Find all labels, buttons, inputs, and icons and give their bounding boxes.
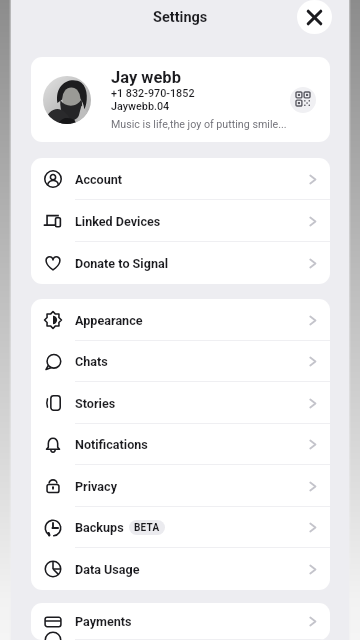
staticText: Payments [75,614,132,629]
button[interactable]: Notifications [31,424,330,465]
staticText: Chats [75,354,108,369]
button[interactable]: Stories [31,382,330,424]
staticText: Settings [153,9,208,26]
staticText: Music is life,the joy of putting smile..… [111,118,287,131]
staticText: Jaywebb.04 [111,100,170,113]
button[interactable]: Chats [31,341,330,382]
staticText: Donate to Signal [75,256,169,271]
staticText: +1 832-970-1852 [111,87,195,100]
button[interactable]: Donate to Signal [31,242,330,284]
button[interactable]: Privacy [31,465,330,507]
button[interactable]: Appearance [31,299,330,341]
staticText: Data Usage [75,562,140,577]
button[interactable]: Backups [31,507,330,548]
staticText: Privacy [75,479,117,494]
button[interactable]: Payments [31,603,330,640]
button[interactable]: QR code [290,87,316,113]
staticText: Notifications [75,437,148,452]
button[interactable]: Account [31,158,330,200]
button[interactable]: Linked Devices [31,200,330,242]
staticText: BETA [134,522,160,534]
button[interactable]: Data Usage [31,548,330,590]
button[interactable]: Close [297,0,332,34]
staticText: Account [75,172,123,187]
staticText: Appearance [75,313,143,328]
staticText: Stories [75,396,116,411]
staticText: Linked Devices [75,214,161,229]
button[interactable]: Jay webb [31,57,330,142]
staticText: Backups [75,520,124,535]
staticText: Jay webb [111,68,181,87]
